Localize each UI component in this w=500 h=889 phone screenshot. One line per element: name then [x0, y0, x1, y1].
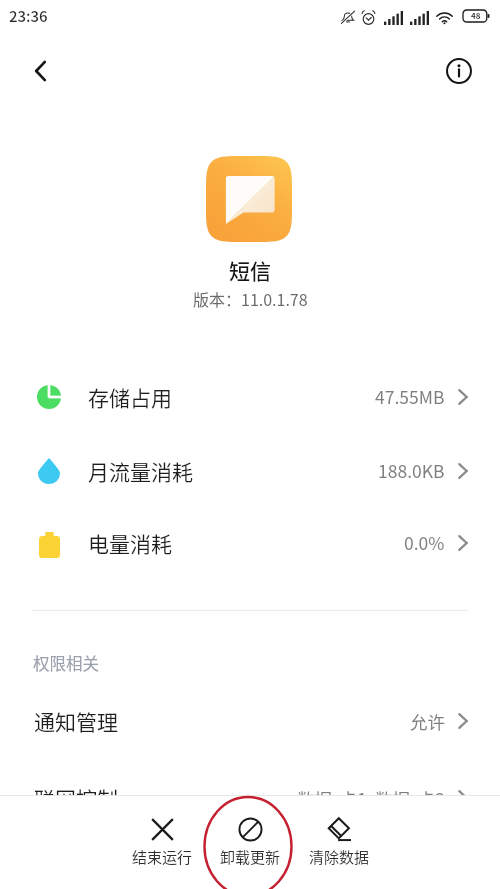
staticText: 48 — [471, 10, 481, 22]
staticText: 0.0% — [404, 530, 445, 555]
staticText: 联网控制 — [34, 783, 118, 813]
staticText: 允许 — [410, 709, 445, 734]
button[interactable]: 电量消耗 — [0, 506, 500, 579]
staticText: 47.55MB — [375, 384, 445, 409]
staticText: 清除数据 — [309, 846, 370, 868]
staticText: 数据 卡1 数据 卡2 — [297, 786, 445, 811]
staticText: 短信 — [229, 255, 271, 285]
staticText: 权限相关 — [33, 651, 99, 675]
staticText: 通知管理 — [34, 706, 118, 736]
button[interactable]: 存储占用 — [0, 360, 500, 433]
button[interactable]: 结束运行 — [118, 813, 207, 868]
staticText: 电量消耗 — [88, 528, 172, 558]
staticText: 卸载更新 — [220, 846, 281, 868]
staticText: 188.0KB — [378, 458, 445, 483]
button[interactable]: 通知管理 — [0, 684, 500, 758]
staticText: 23:36 — [9, 5, 48, 27]
button[interactable]: 月流量消耗 — [0, 434, 500, 507]
staticText: 版本：11.0.1.78 — [193, 287, 308, 310]
button[interactable]: App info — [436, 48, 482, 94]
button[interactable]: Back — [18, 48, 64, 94]
staticText: 存储占用 — [88, 382, 172, 412]
button[interactable]: 清除数据 — [295, 813, 384, 868]
staticText: 结束运行 — [132, 846, 193, 868]
button[interactable]: 卸载更新 — [206, 813, 295, 868]
button[interactable]: 联网控制 — [0, 761, 500, 835]
staticText: 月流量消耗 — [88, 456, 193, 486]
